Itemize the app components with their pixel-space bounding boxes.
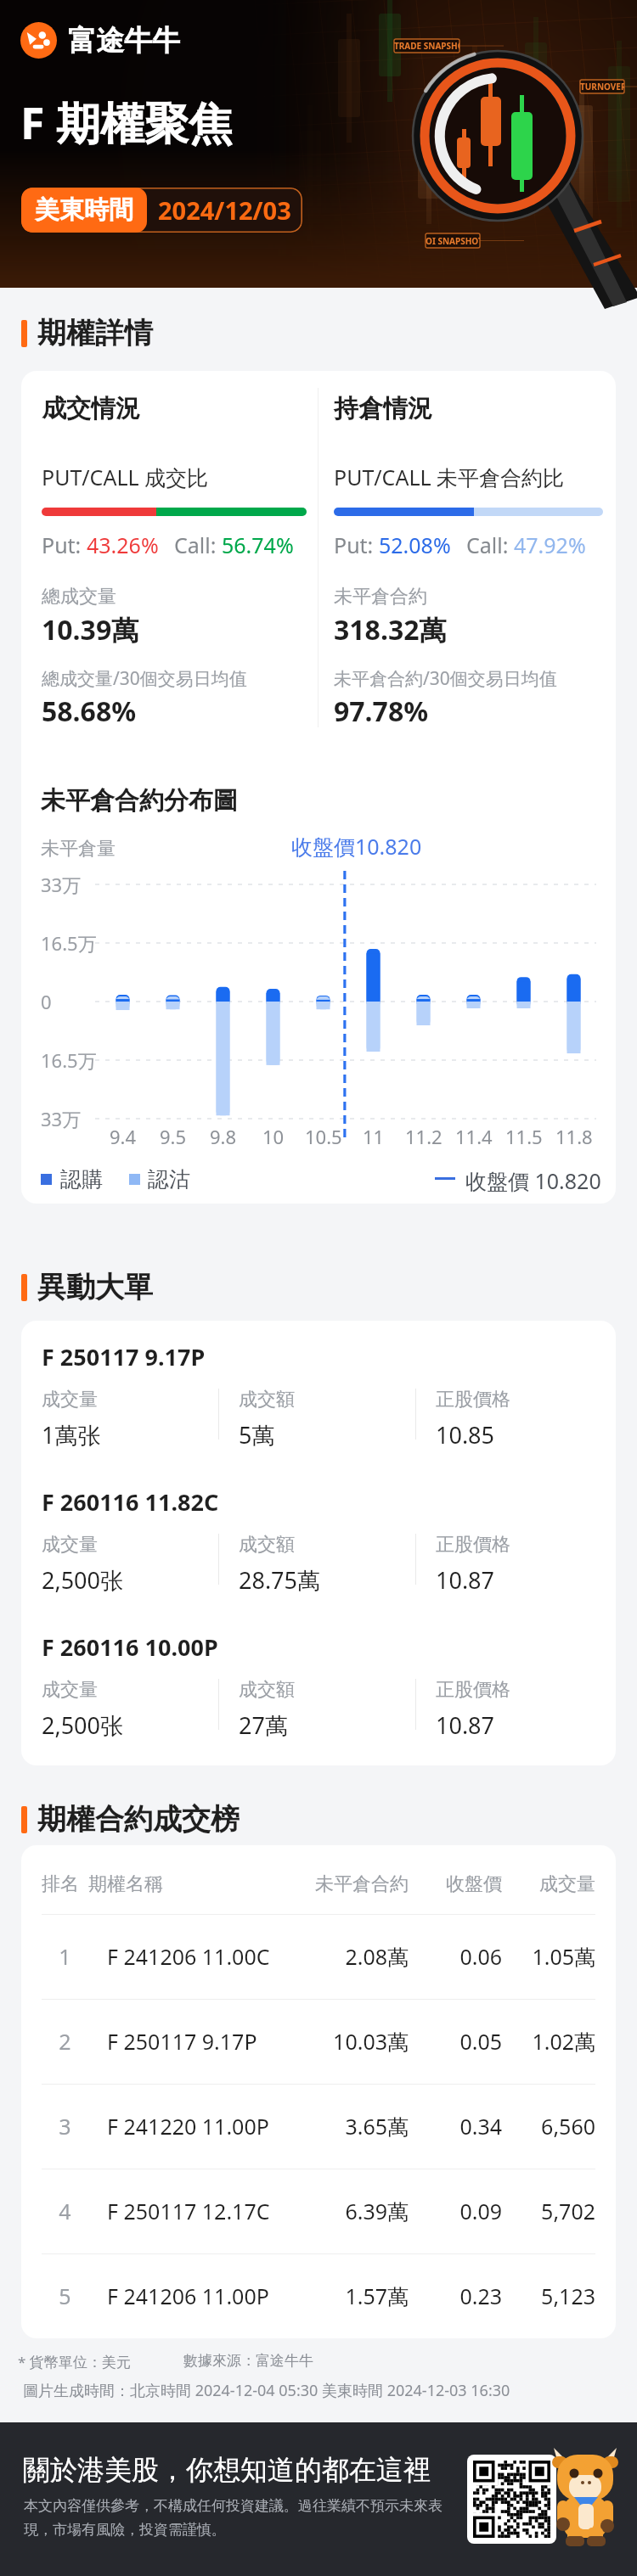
button[interactable]: 1: [21, 1914, 616, 1999]
button[interactable]: 期權詳情: [21, 315, 153, 351]
staticText: 5,702: [502, 2197, 595, 2225]
staticText: 11.5: [505, 1124, 543, 1149]
staticText: 認沽: [148, 1166, 190, 1193]
staticText: 0.06: [409, 1942, 502, 1971]
staticText: 成交額: [239, 1678, 295, 1702]
button[interactable]: Futu logo: [20, 22, 180, 59]
staticText: 排名: [42, 1872, 88, 1896]
staticText: 9.5: [160, 1124, 187, 1149]
staticText: F 260116 10.00P: [42, 1631, 218, 1663]
staticText: Put:: [334, 530, 379, 559]
staticText: 9.4: [110, 1124, 137, 1149]
staticText: 97.78%: [334, 693, 429, 730]
staticText: 總成交量: [42, 585, 116, 609]
button[interactable]: 美東時間: [21, 188, 302, 233]
staticText: 2,500张: [42, 1709, 124, 1741]
staticText: 未平倉合約: [286, 1872, 409, 1896]
staticText: 成交量: [42, 1678, 98, 1702]
staticText: 未平倉合約: [334, 585, 427, 609]
staticText: TRADE SNAPSHOT: [394, 40, 459, 52]
staticText: 成交量: [42, 1533, 98, 1557]
staticText: F 241206 11.00P: [107, 2281, 286, 2310]
staticText: 11.8: [555, 1124, 593, 1149]
staticText: 正股價格: [436, 1678, 510, 1702]
staticText: 0.05: [409, 2027, 502, 2056]
staticText: * 貨幣單位：美元: [18, 2352, 131, 2371]
staticText: 未平倉合約分布圖: [41, 785, 238, 817]
staticText: 0.34: [409, 2112, 502, 2141]
button[interactable]: 4: [21, 2169, 616, 2253]
staticText: 期權名稱: [88, 1872, 286, 1896]
button[interactable]: 2: [21, 1999, 616, 2084]
staticText: 2: [42, 2027, 88, 2056]
staticText: 11: [363, 1124, 385, 1149]
staticText: 3.65萬: [286, 2112, 409, 2141]
staticText: 0.23: [409, 2281, 502, 2310]
button[interactable]: 期權合約成交榜: [21, 1801, 240, 1838]
button[interactable]: 異動大單: [21, 1269, 153, 1305]
staticText: 成交額: [239, 1533, 295, 1557]
staticText: 1: [42, 1942, 88, 1971]
staticText: 認購: [60, 1166, 103, 1193]
staticText: F 期權聚焦: [20, 92, 234, 152]
staticText: 58.68%: [42, 693, 137, 730]
staticText: 數據來源：富途牛牛: [183, 2352, 313, 2370]
staticText: 1.02萬: [502, 2027, 595, 2056]
staticText: 27萬: [239, 1709, 288, 1741]
staticText: 持倉情況: [334, 393, 432, 424]
staticText: 2,500张: [42, 1564, 124, 1596]
staticText: TURNOVER: [580, 81, 624, 93]
staticText: 16.5万: [41, 930, 97, 956]
staticText: Call:: [174, 530, 222, 559]
button[interactable]: F 250117 9.17P: [21, 1341, 616, 1477]
staticText: 1萬张: [42, 1419, 101, 1451]
staticText: 9.8: [210, 1124, 237, 1149]
staticText: 富途牛牛: [68, 23, 180, 59]
staticText: Put:: [42, 530, 87, 559]
staticText: 33万: [41, 872, 82, 897]
staticText: 16.5万: [41, 1047, 97, 1073]
staticText: PUT/CALL 成交比: [42, 463, 209, 491]
staticText: 10: [262, 1124, 285, 1149]
staticText: 10.03萬: [286, 2027, 409, 2056]
staticText: 33万: [41, 1106, 82, 1131]
button[interactable]: 3: [21, 2084, 616, 2169]
staticText: 56.74%: [222, 530, 294, 559]
button[interactable]: F 260116 11.82C: [21, 1486, 616, 1622]
staticText: F 241220 11.00P: [107, 2112, 286, 2141]
button[interactable]: F 260116 10.00P: [21, 1631, 616, 1765]
staticText: 3: [42, 2112, 88, 2141]
staticText: 5,123: [502, 2281, 595, 2310]
staticText: 總成交量/30個交易日均值: [42, 666, 247, 691]
button[interactable]: QR code: [467, 2455, 556, 2544]
staticText: 5萬: [239, 1419, 275, 1451]
button[interactable]: 5: [21, 2253, 616, 2338]
staticText: 318.32萬: [334, 611, 447, 648]
staticText: 期權合約成交榜: [37, 1801, 240, 1838]
staticText: 5: [42, 2281, 88, 2310]
staticText: 10.87: [436, 1564, 495, 1596]
staticText: 2.08萬: [286, 1942, 409, 1971]
staticText: 未平倉量: [41, 837, 116, 861]
staticText: 本文內容僅供參考，不構成任何投資建議。過往業績不預示未來表 現，市場有風險，投資…: [24, 2497, 443, 2539]
staticText: 43.26%: [87, 530, 159, 559]
staticText: F 260116 11.82C: [42, 1486, 219, 1518]
staticText: 10.85: [436, 1419, 495, 1451]
staticText: 11.2: [405, 1124, 443, 1149]
staticText: 47.92%: [514, 530, 586, 559]
staticText: 10.39萬: [42, 611, 139, 648]
staticText: 10.5: [305, 1124, 342, 1149]
staticText: Call:: [466, 530, 514, 559]
staticText: 成交量: [42, 1388, 98, 1411]
staticText: 0.09: [409, 2197, 502, 2225]
staticText: F 250117 9.17P: [107, 2027, 286, 2056]
staticText: 成交量: [502, 1872, 595, 1896]
staticText: 圖片生成時間：北京時間 2024-12-04 05:30 美東時間 2024-1…: [23, 2380, 510, 2401]
staticText: 收盤價 10.820: [465, 1166, 601, 1193]
staticText: 6,560: [502, 2112, 595, 2141]
staticText: 0: [41, 989, 52, 1014]
staticText: 4: [42, 2197, 88, 2225]
staticText: PUT/CALL 未平倉合約比: [334, 463, 565, 491]
staticText: 28.75萬: [239, 1564, 321, 1596]
staticText: 關於港美股，你想知道的都在這裡: [23, 2453, 431, 2487]
